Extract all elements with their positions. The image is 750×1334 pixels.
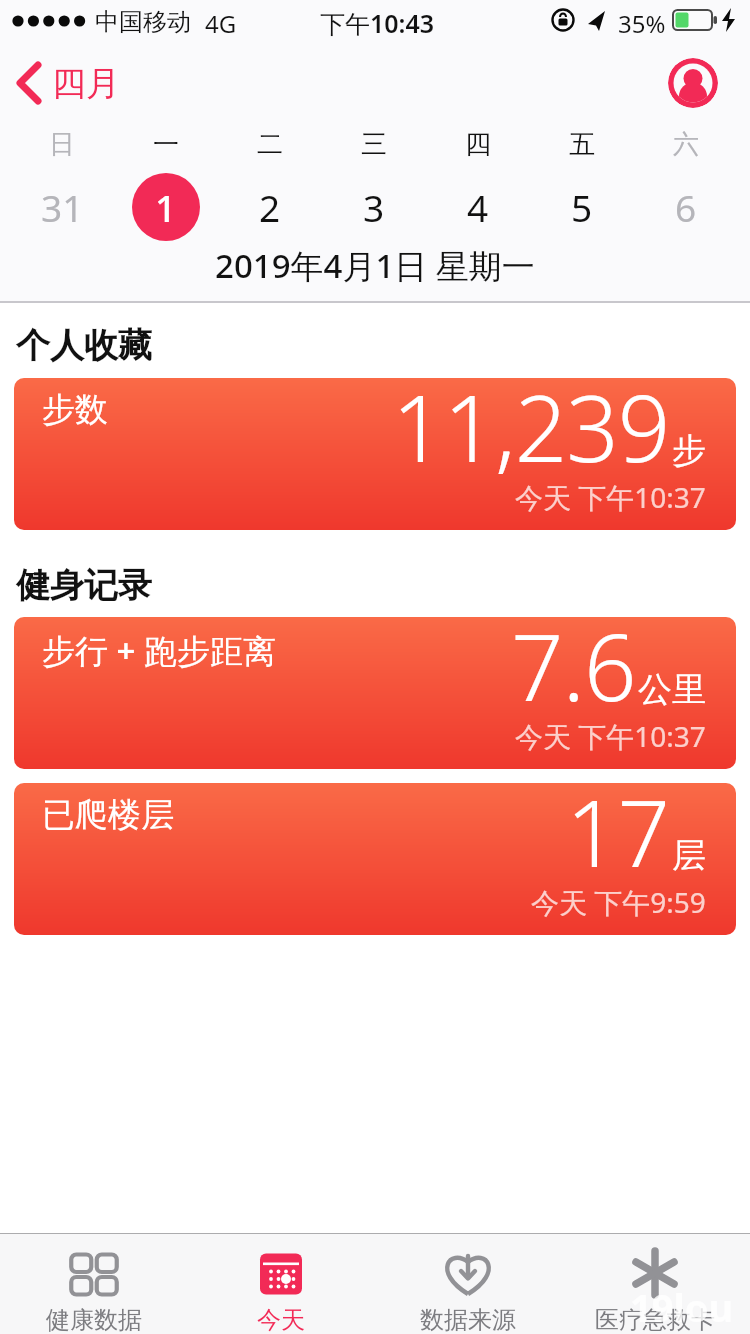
- staticText: 六: [673, 128, 699, 161]
- staticText: 11,239: [392, 378, 670, 489]
- staticText: 健康数据: [46, 1305, 142, 1334]
- staticText: 19lou: [630, 1281, 734, 1333]
- staticText: 今天 下午9:59: [531, 883, 706, 921]
- staticText: 个人收藏: [16, 324, 152, 367]
- button[interactable]: 今天: [187, 1233, 374, 1334]
- staticText: 下午10:43: [320, 6, 435, 40]
- staticText: 35%: [618, 7, 666, 40]
- button[interactable]: 步行 + 跑步距离: [14, 617, 736, 769]
- button[interactable]: 已爬楼层: [14, 783, 736, 935]
- staticText: 17: [566, 783, 670, 894]
- staticText: 公里: [638, 668, 706, 711]
- staticText: 6: [675, 182, 697, 232]
- staticText: 二: [257, 128, 283, 161]
- staticText: 医疗急救卡: [595, 1305, 715, 1334]
- staticText: 今天 下午10:37: [515, 478, 706, 516]
- staticText: 层: [672, 834, 706, 877]
- staticText: 一: [153, 128, 179, 161]
- staticText: 步数: [42, 389, 108, 431]
- staticText: 今天: [257, 1305, 305, 1334]
- staticText: 中国移动: [95, 7, 191, 37]
- staticText: 步: [672, 429, 706, 472]
- button[interactable]: 1: [114, 172, 218, 242]
- button[interactable]: 健康数据: [0, 1233, 187, 1334]
- staticText: 2019年4月1日 星期一: [215, 243, 535, 288]
- button[interactable]: 4: [426, 172, 530, 242]
- staticText: 3: [363, 182, 385, 232]
- staticText: 三: [361, 128, 387, 161]
- staticText: 日: [49, 128, 75, 161]
- staticText: 已爬楼层: [42, 794, 174, 836]
- button[interactable]: 6: [634, 172, 738, 242]
- staticText: 1: [155, 182, 177, 232]
- staticText: 7.6: [511, 617, 636, 728]
- button[interactable]: 数据来源: [374, 1233, 561, 1334]
- staticText: 4G: [205, 7, 237, 40]
- staticText: 健身记录: [16, 564, 152, 607]
- staticText: 五: [569, 128, 595, 161]
- staticText: 31: [41, 182, 84, 232]
- button[interactable]: 2: [218, 172, 322, 242]
- staticText: 四月: [52, 62, 120, 105]
- button[interactable]: 5: [530, 172, 634, 242]
- staticText: 数据来源: [420, 1305, 516, 1334]
- staticText: 四: [465, 128, 491, 161]
- button[interactable]: 医疗急救卡: [561, 1233, 748, 1334]
- staticText: 步行 + 跑步距离: [42, 628, 277, 673]
- button[interactable]: 31: [10, 172, 114, 242]
- button[interactable]: [668, 58, 718, 108]
- button[interactable]: 四月: [10, 56, 140, 110]
- staticText: 2: [259, 182, 281, 232]
- button[interactable]: 3: [322, 172, 426, 242]
- staticText: 今天 下午10:37: [515, 717, 706, 755]
- staticText: 5: [571, 182, 593, 232]
- button[interactable]: 步数: [14, 378, 736, 530]
- staticText: 4: [467, 182, 489, 232]
